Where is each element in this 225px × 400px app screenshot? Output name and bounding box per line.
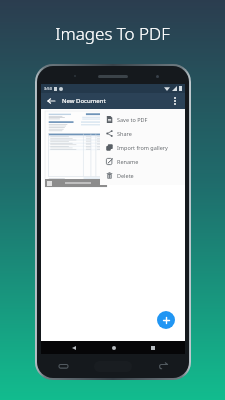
staticText: Rename [117,158,139,165]
button[interactable]: Delete [100,168,185,182]
button[interactable] [45,179,107,187]
staticText: Import from gallery [117,144,168,151]
staticText: Images To PDF [55,22,170,45]
button[interactable]: Rename [100,154,185,168]
button[interactable]: More options [169,95,181,107]
button[interactable]: Import from gallery [100,140,185,154]
staticText: Share [117,130,132,137]
staticText: 3:50 [44,86,52,91]
button[interactable]: Back [67,341,80,354]
button[interactable]: Back [45,95,57,107]
button[interactable]: Home [107,341,120,354]
button[interactable]: Share [100,126,185,140]
button[interactable]: Add images [157,311,175,329]
staticText: Delete [117,172,134,179]
staticText: New Document [62,97,106,105]
button[interactable]: Recent apps [146,341,159,354]
staticText: Save to PDF [117,116,148,123]
button[interactable]: Save to PDF [100,112,185,126]
